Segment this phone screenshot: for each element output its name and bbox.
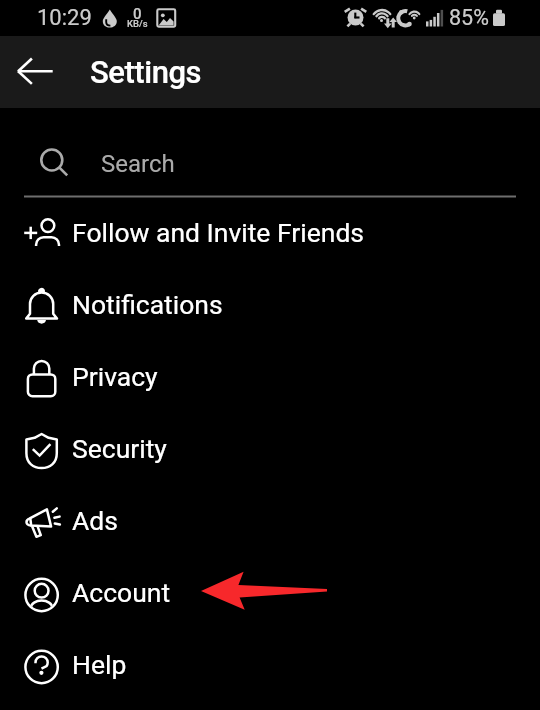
button[interactable]: Help <box>0 631 540 703</box>
button[interactable]: Account <box>0 559 540 631</box>
button[interactable]: Ads <box>0 487 540 559</box>
staticText: Account <box>72 577 171 608</box>
button[interactable]: Search <box>0 108 540 199</box>
button[interactable]: Security <box>0 415 540 487</box>
staticText: Privacy <box>72 361 158 392</box>
staticText: Settings <box>90 54 202 90</box>
button[interactable]: Notifications <box>0 271 540 343</box>
button[interactable]: Back <box>8 44 64 100</box>
staticText: Help <box>72 649 127 680</box>
button[interactable]: Follow and Invite Friends <box>0 199 540 271</box>
staticText: Notifications <box>72 289 223 320</box>
staticText: 10:29 <box>37 5 92 31</box>
staticText: Ads <box>72 505 118 536</box>
button[interactable]: Privacy <box>0 343 540 415</box>
staticText: KB/s <box>127 18 148 29</box>
staticText: Search <box>101 150 175 178</box>
staticText: Follow and Invite Friends <box>72 217 365 248</box>
staticText: Security <box>72 433 167 464</box>
staticText: 0 <box>133 5 142 23</box>
staticText: 85% <box>449 5 489 30</box>
